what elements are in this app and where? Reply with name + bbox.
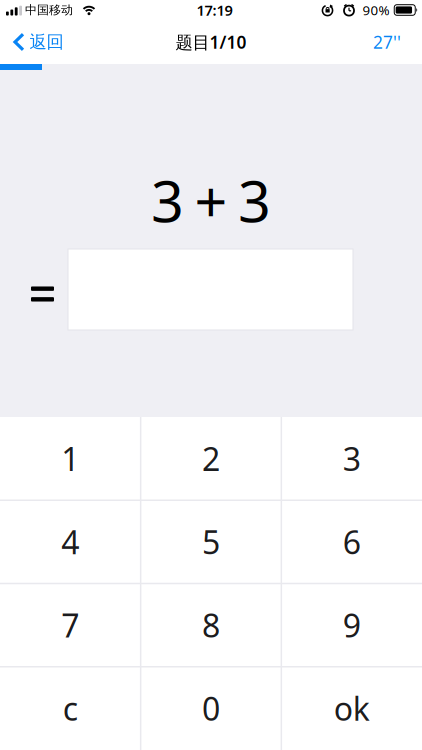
button[interactable]: c [0, 667, 141, 750]
button[interactable]: 2 [141, 417, 281, 500]
staticText: 4 [61, 521, 79, 563]
staticText: 17:19 [196, 0, 232, 20]
staticText: 5 [202, 521, 220, 563]
button[interactable]: ok [281, 667, 422, 750]
staticText: c [63, 687, 78, 730]
staticText: 题目1/10 [175, 30, 246, 53]
staticText: 2 [202, 437, 220, 480]
staticText: 6 [343, 521, 361, 563]
staticText: 中国移动 [25, 3, 73, 17]
staticText: 返回 [29, 31, 63, 53]
staticText: 9 [343, 604, 361, 646]
button[interactable]: 0 [141, 667, 281, 750]
button[interactable]: 4 [0, 500, 141, 583]
button[interactable]: 8 [141, 583, 281, 667]
button[interactable]: 6 [281, 500, 422, 583]
staticText: 8 [202, 604, 220, 646]
staticText: 3 [343, 437, 361, 480]
staticText: 90% [362, 1, 389, 19]
staticText: 0 [202, 687, 220, 730]
staticText: 7 [61, 604, 79, 646]
staticText: 3 + 3 [151, 162, 271, 238]
button[interactable]: 5 [141, 500, 281, 583]
button[interactable]: 9 [281, 583, 422, 667]
button[interactable]: 3 [281, 417, 422, 500]
button[interactable]: 7 [0, 583, 141, 667]
staticText: 27'' [373, 30, 401, 53]
button[interactable]: 1 [0, 417, 141, 500]
button[interactable]: 返回 [0, 31, 63, 53]
staticText: 1 [61, 437, 79, 480]
staticText: ok [334, 687, 370, 730]
